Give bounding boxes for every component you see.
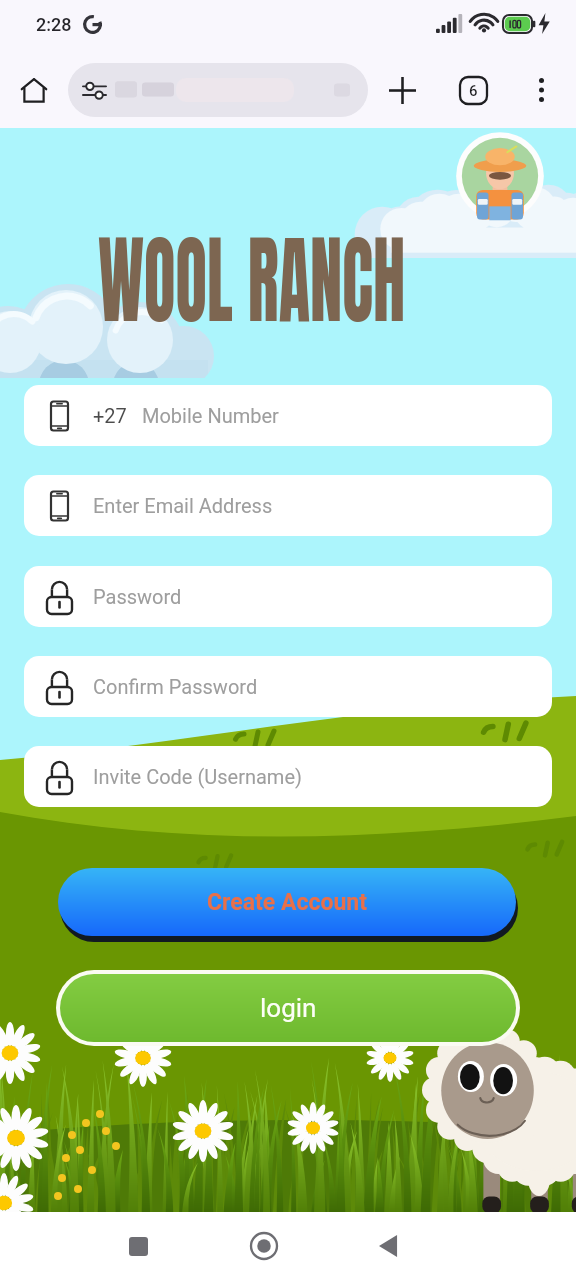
staticText: 2:28 [36, 14, 72, 35]
button[interactable]: Recent apps [112, 1220, 164, 1272]
button[interactable]: Password [24, 566, 552, 627]
staticText: WOOL RANCH [98, 206, 405, 352]
button[interactable]: Create Account [58, 868, 516, 936]
button[interactable]: login [60, 974, 516, 1042]
staticText: login [260, 993, 317, 1023]
button[interactable]: Invite Code (Username) [24, 746, 552, 807]
button[interactable]: Tabs [451, 68, 495, 112]
staticText: Enter Email Address [93, 494, 273, 517]
staticText: +27 [93, 404, 127, 427]
staticText: Confirm Password [93, 675, 258, 698]
button[interactable]: Home [12, 68, 56, 112]
staticText: Invite Code (Username) [93, 765, 302, 788]
staticText: 6 [469, 82, 478, 100]
button[interactable]: Home [238, 1220, 290, 1272]
button[interactable] [68, 63, 368, 117]
button[interactable]: Back [364, 1220, 416, 1272]
button[interactable]: Confirm Password [24, 656, 552, 717]
staticText: Create Account [207, 889, 367, 916]
staticText: Password [93, 585, 182, 608]
button[interactable]: More options [519, 68, 563, 112]
button[interactable]: New tab [380, 68, 424, 112]
button[interactable]: +27 [24, 385, 552, 446]
staticText: Mobile Number [142, 404, 279, 427]
button[interactable]: Enter Email Address [24, 475, 552, 536]
